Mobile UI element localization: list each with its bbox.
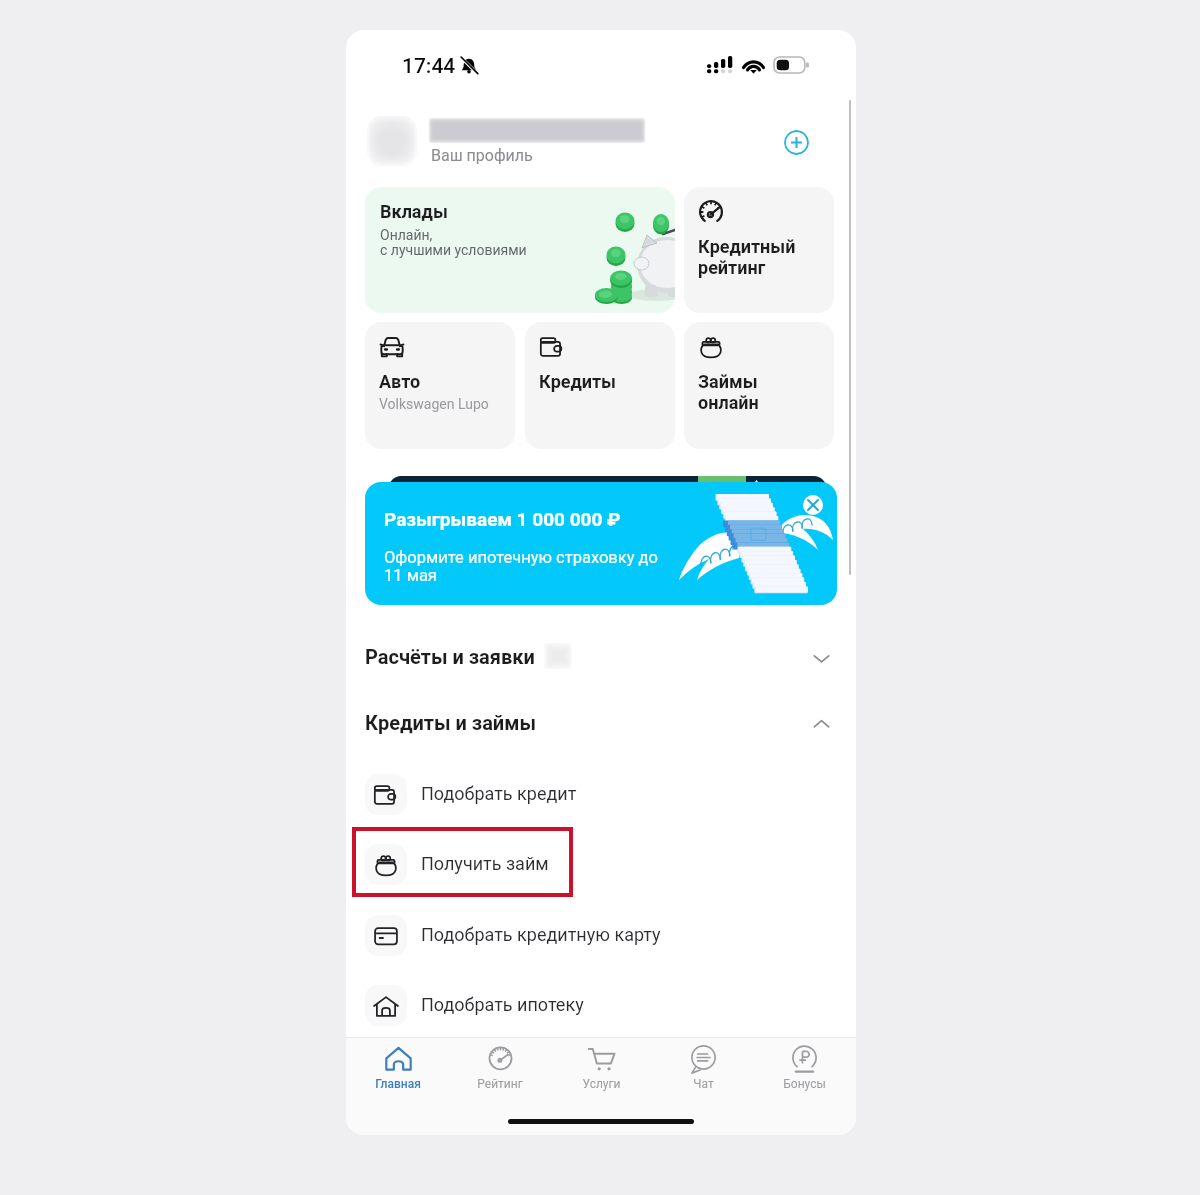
- staticText: Получить займ: [421, 853, 549, 874]
- staticText: Разыгрываем 1 000 000 ₽: [384, 508, 621, 530]
- staticText: Volkswagen Lupo: [379, 396, 489, 412]
- staticText: Авто: [379, 371, 421, 392]
- button[interactable]: Займы онлайн: [684, 322, 834, 449]
- button[interactable]: Подобрать кредит: [346, 759, 856, 829]
- staticText: Главная: [375, 1077, 421, 1091]
- button[interactable]: Кредитный рейтинг: [684, 187, 834, 313]
- staticText: Оформите ипотечную страховку до 11 мая: [384, 548, 658, 585]
- staticText: Вклады: [380, 201, 448, 222]
- button[interactable]: Авто: [365, 322, 515, 449]
- staticText: Подобрать ипотеку: [421, 994, 584, 1015]
- button[interactable]: Чат: [659, 1038, 747, 1104]
- staticText: Ваш профиль: [431, 146, 533, 165]
- button[interactable]: Подобрать ипотеку: [346, 970, 856, 1040]
- button[interactable]: Получить займ: [346, 829, 856, 899]
- staticText: Чат: [693, 1077, 714, 1091]
- staticText: Онлайн, с лучшими условиями: [380, 227, 527, 258]
- staticText: Рейтинг: [477, 1077, 523, 1091]
- button[interactable]: Кредиты и займы: [346, 693, 856, 749]
- staticText: Подобрать кредитную карту: [421, 924, 661, 945]
- staticText: Расчёты и заявки: [365, 645, 535, 668]
- button[interactable]: Add product: [784, 130, 809, 155]
- button[interactable]: Кредиты: [525, 322, 675, 449]
- button[interactable]: Услуги: [557, 1038, 645, 1104]
- button[interactable]: Вклады: [365, 187, 675, 313]
- staticText: Подобрать кредит: [421, 783, 577, 804]
- staticText: 17:44: [402, 54, 456, 79]
- button[interactable]: Бонусы: [760, 1038, 848, 1104]
- button[interactable]: Ваш профиль: [346, 110, 856, 182]
- staticText: Кредиты и займы: [365, 711, 536, 734]
- staticText: Услуги: [582, 1077, 621, 1091]
- button[interactable]: Рейтинг: [456, 1038, 544, 1104]
- staticText: Займы онлайн: [698, 371, 759, 414]
- staticText: Бонусы: [783, 1077, 826, 1091]
- staticText: Кредиты: [539, 371, 616, 392]
- button[interactable]: Разыгрываем 1 000 000 ₽: [365, 482, 837, 605]
- button[interactable]: Расчёты и заявки: [346, 627, 856, 683]
- button[interactable]: Close banner: [803, 495, 823, 515]
- button[interactable]: Подобрать кредитную карту: [346, 900, 856, 970]
- staticText: Кредитный рейтинг: [698, 236, 796, 279]
- button[interactable]: Главная: [354, 1038, 442, 1104]
